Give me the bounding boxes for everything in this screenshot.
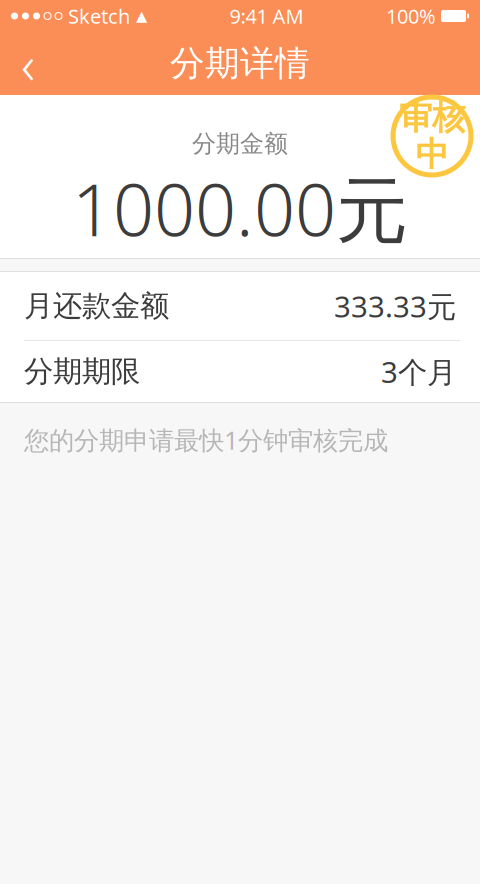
- staticText: 月还款金额: [24, 288, 169, 324]
- staticText: 1000.00元: [72, 160, 408, 256]
- staticText: 中: [415, 134, 448, 175]
- staticText: ‹: [21, 28, 35, 99]
- staticText: 333.33元: [334, 286, 456, 325]
- staticText: 100%: [386, 3, 436, 29]
- staticText: 分期期限: [24, 353, 140, 389]
- staticText: 9:41 AM: [229, 3, 303, 29]
- staticText: Sketch: [68, 3, 130, 29]
- staticText: 您的分期申请最快1分钟审核完成: [24, 423, 388, 457]
- staticText: 3个月: [381, 352, 456, 391]
- staticText: 分期金额: [192, 129, 288, 158]
- staticText: ▲: [136, 8, 147, 24]
- staticText: 审核: [399, 97, 465, 138]
- button[interactable]: Back: [0, 33, 56, 93]
- staticText: 分期详情: [170, 42, 310, 85]
